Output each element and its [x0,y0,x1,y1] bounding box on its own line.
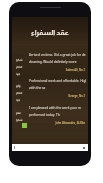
staticText: نعم [16,111,21,114]
staticText: ممتاز [16,65,23,68]
staticText: Professional work and affordable. Higl [29,79,87,83]
staticText: performed today. Th [29,113,60,117]
staticText: جيد [16,72,21,75]
button[interactable]: رائع [12,79,88,105]
button[interactable]: نعم [12,106,88,132]
staticText: with the sa [29,86,46,90]
staticText: ممتاز [16,91,23,94]
staticText: عقد السفراء [31,29,69,37]
button[interactable]: شكرا [12,53,88,79]
staticText: I am pleased with the work your m [29,106,81,110]
staticText: Arrived on time. Did a great job for de [29,53,86,57]
staticText: cleaning. Would definitely score [29,60,77,64]
staticText: شكرا [16,58,23,61]
staticText: George, No.1 [12,94,85,98]
button[interactable]: Send [12,144,88,151]
staticText: شكرا [16,118,23,121]
staticText: Salma Ali, No.1 [12,68,85,72]
staticText: رائع [16,84,21,87]
staticText: جيد [16,98,21,101]
staticText: John Alexandru, Al-Kha [12,121,85,125]
